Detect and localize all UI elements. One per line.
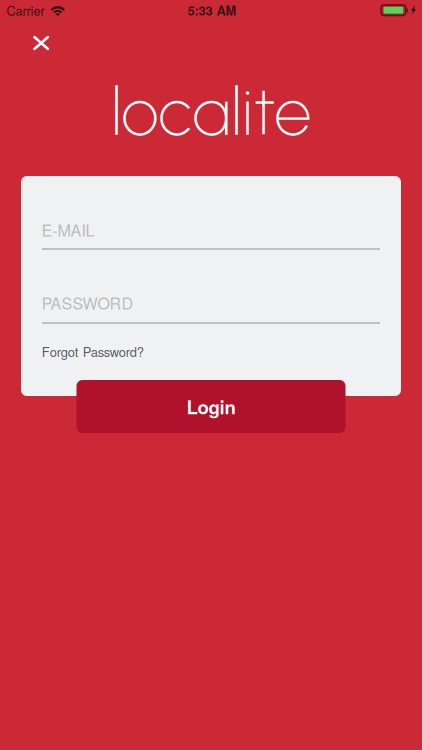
staticText: E-MAIL: [41, 218, 94, 241]
button[interactable]: Login: [76, 380, 345, 433]
staticText: PASSWORD: [41, 291, 133, 314]
staticText: 5:33 AM: [187, 1, 236, 19]
staticText: Login: [186, 393, 235, 420]
staticText: Forgot Password?: [42, 342, 144, 360]
button[interactable]: Forgot Password?: [0, 0, 422, 750]
button[interactable]: Close: [22, 25, 60, 61]
staticText: localite: [111, 71, 311, 151]
staticText: Carrier: [6, 1, 44, 19]
